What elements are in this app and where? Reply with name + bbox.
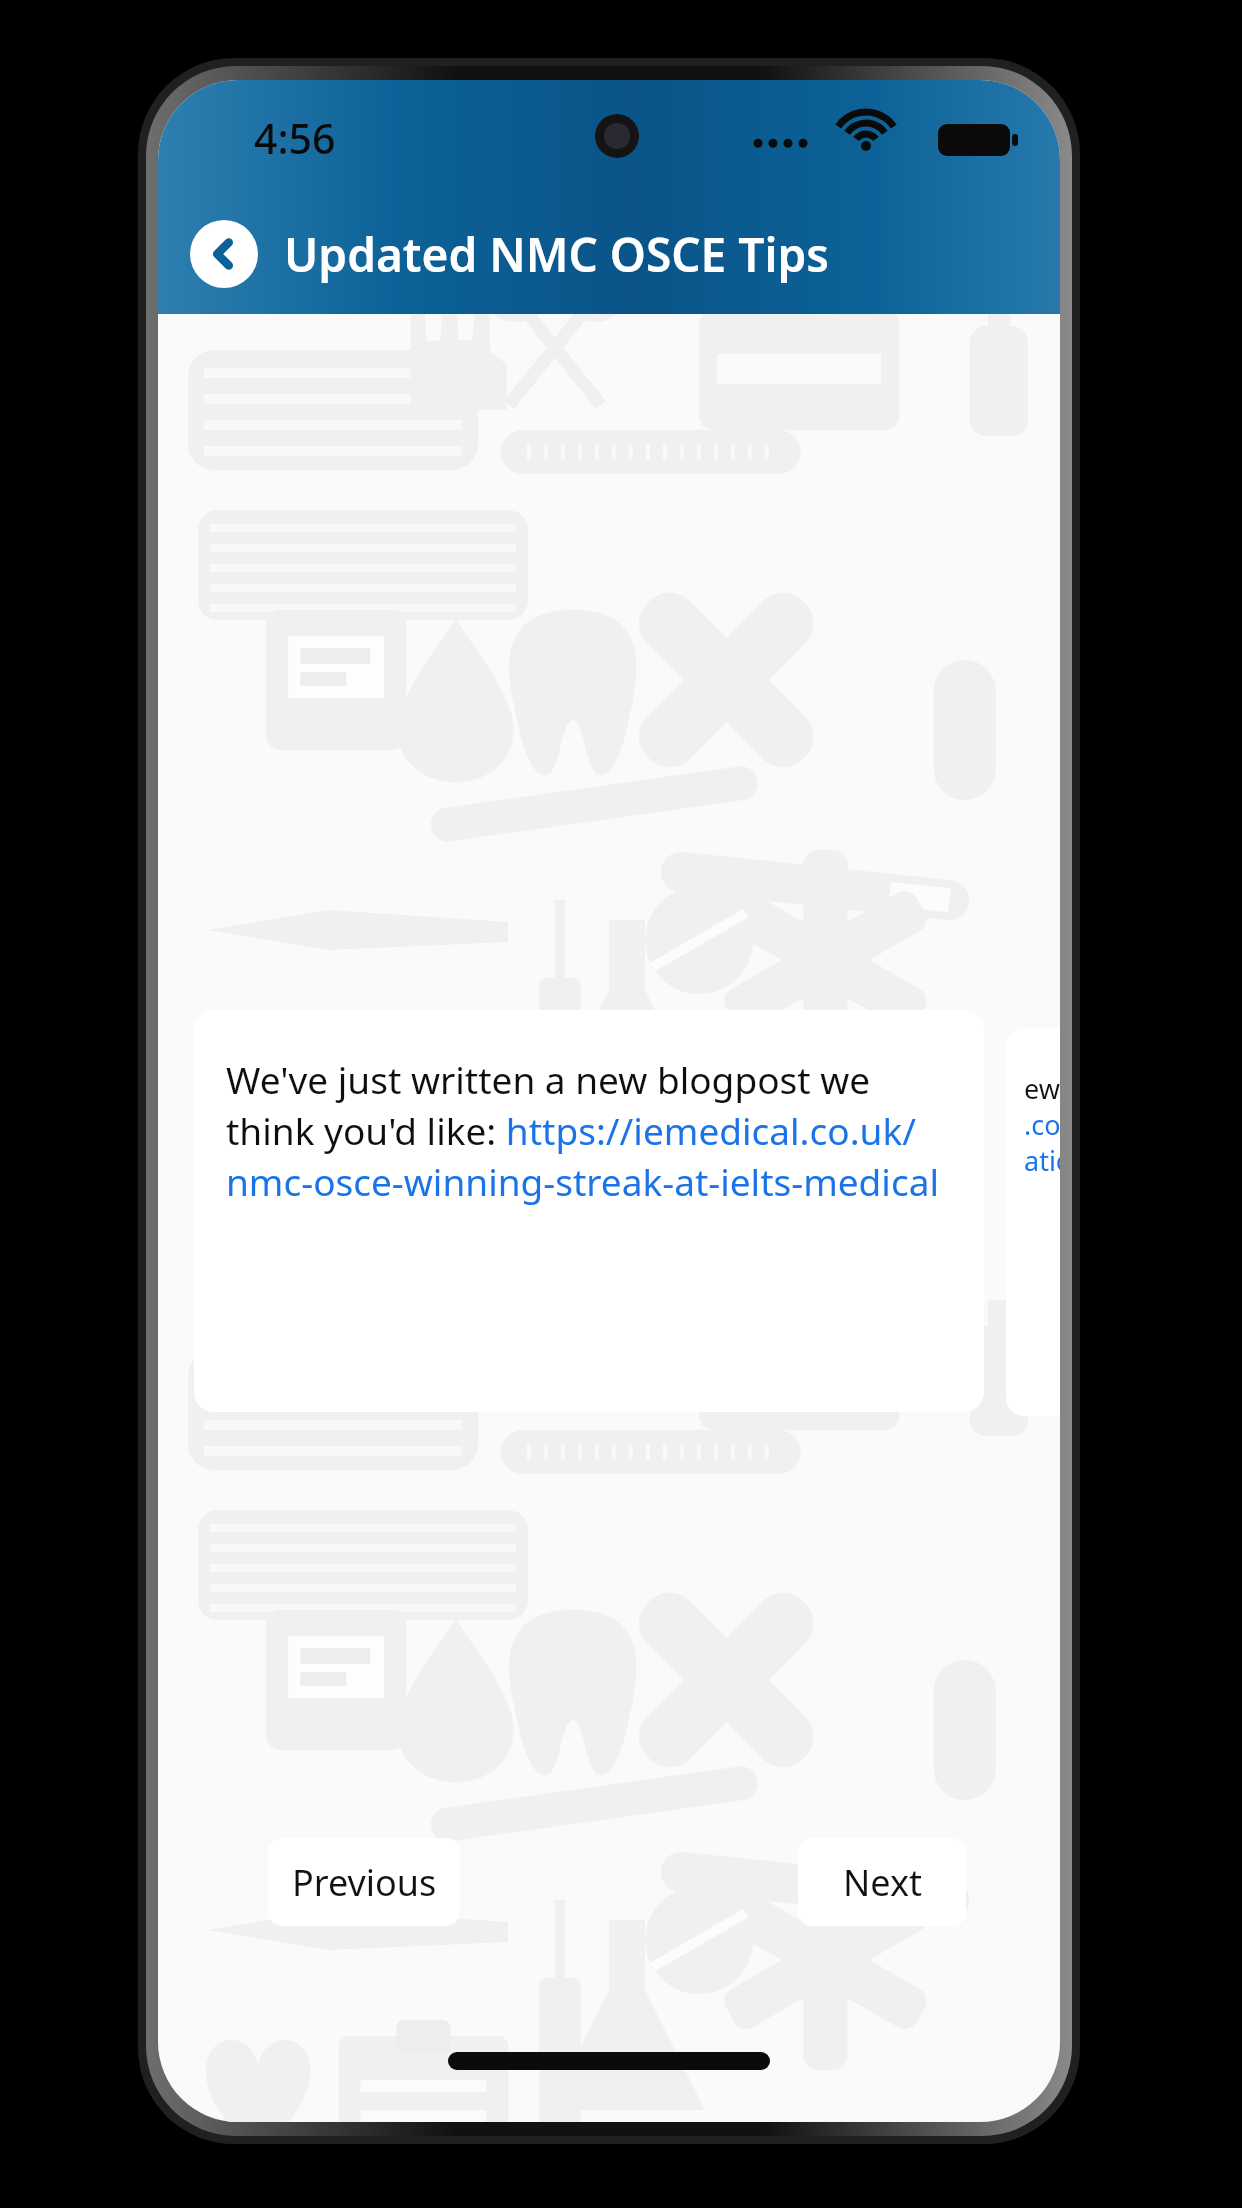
button[interactable]: ew blogpost .co.uk/legacy ations-osce [1006, 1028, 1060, 1416]
staticText: Updated NMC OSCE Tips [284, 223, 829, 286]
button[interactable]: Next [798, 1838, 966, 1926]
staticText: Previous [292, 1858, 437, 1907]
staticText: 4:56 [254, 110, 336, 166]
button[interactable]: Back [190, 220, 258, 288]
button[interactable]: Previous [268, 1838, 460, 1926]
staticText: Next [843, 1858, 922, 1907]
staticText: We've just written a new blogpost we thi… [226, 1054, 952, 1207]
staticText: ew blogpost .co.uk/legacy ations-osce [1024, 1070, 1060, 1179]
button[interactable]: We've just written a new blogpost we thi… [194, 1010, 984, 1412]
